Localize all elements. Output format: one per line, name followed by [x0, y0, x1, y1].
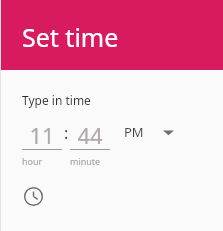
button[interactable]: 11 [22, 120, 62, 167]
other: Select AM or PM [163, 128, 174, 136]
staticText: 44 [77, 120, 103, 146]
staticText: PM [124, 123, 144, 141]
staticText: Set time [22, 20, 119, 54]
staticText: hour [22, 155, 43, 167]
button[interactable]: PM [124, 123, 174, 141]
staticText: 11 [29, 120, 55, 146]
staticText: Type in time [22, 92, 91, 108]
staticText: : [64, 122, 69, 144]
staticText: minute [70, 155, 101, 167]
button[interactable]: 44 [70, 120, 110, 167]
button[interactable]: Switch to clock picker [22, 185, 44, 207]
